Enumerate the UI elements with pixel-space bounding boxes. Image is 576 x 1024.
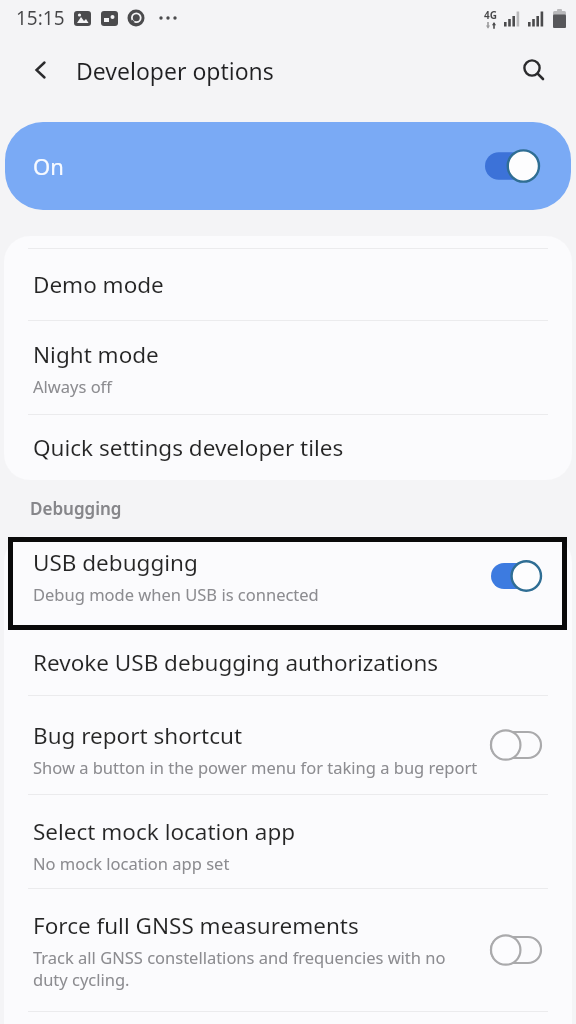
staticText: Revoke USB debugging authorizations	[33, 647, 439, 678]
button[interactable]	[490, 729, 542, 761]
button[interactable]	[490, 560, 542, 592]
staticText: Select mock location app	[33, 816, 296, 847]
staticText: USB debugging	[33, 547, 198, 578]
staticText: Track all GNSS constellations and freque…	[33, 946, 446, 968]
staticText: Night mode	[33, 339, 159, 370]
staticText: Always off	[33, 375, 112, 397]
button[interactable]: Select mock location app	[4, 795, 572, 888]
staticText: On	[33, 151, 64, 181]
button[interactable]: Bug report shortcut	[4, 696, 572, 794]
staticText: Demo mode	[33, 269, 164, 300]
staticText: Developer options	[76, 55, 274, 86]
button[interactable]	[32, 50, 72, 90]
staticText: duty cycling.	[33, 968, 130, 990]
button[interactable]: Night mode	[4, 321, 572, 414]
button[interactable]: Revoke USB debugging authorizations	[4, 630, 572, 695]
staticText: Show a button in the power menu for taki…	[33, 756, 478, 778]
button[interactable]	[484, 149, 540, 183]
button[interactable]: Force full GNSS measurements	[4, 889, 572, 1011]
staticText: No mock location app set	[33, 852, 230, 874]
staticText: Debug mode when USB is connected	[33, 583, 319, 605]
staticText: 4G	[484, 8, 497, 22]
staticText: Debugging	[30, 497, 122, 520]
button[interactable]	[490, 934, 542, 966]
staticText: Quick settings developer tiles	[33, 432, 344, 463]
button[interactable]: USB debugging	[4, 536, 572, 616]
staticText: Force full GNSS measurements	[33, 910, 359, 941]
button[interactable]: Demo mode	[4, 249, 572, 320]
staticText: 15:15	[16, 5, 65, 31]
button[interactable]	[518, 54, 550, 86]
button[interactable]: Quick settings developer tiles	[4, 415, 572, 480]
staticText: Bug report shortcut	[33, 720, 243, 751]
button[interactable]: On	[5, 122, 571, 210]
